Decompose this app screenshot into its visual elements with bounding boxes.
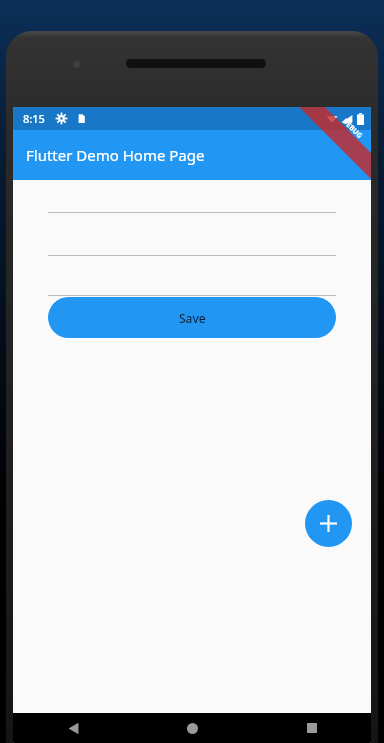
button[interactable]: Back bbox=[13, 713, 133, 743]
button[interactable]: Save bbox=[48, 297, 336, 338]
staticText: Save bbox=[179, 310, 206, 326]
button[interactable]: Home bbox=[133, 713, 252, 743]
button[interactable]: Recents bbox=[252, 713, 371, 743]
staticText: DEBUG bbox=[340, 117, 365, 141]
staticText: Flutter Demo Home Page bbox=[26, 145, 205, 165]
button[interactable]: Add bbox=[305, 500, 352, 547]
staticText: 8:15 bbox=[23, 111, 45, 126]
